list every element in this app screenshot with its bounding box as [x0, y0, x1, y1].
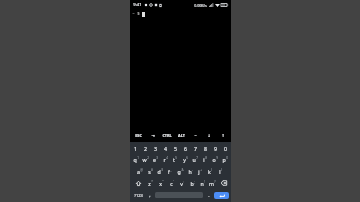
staticText: 1 — [137, 156, 139, 160]
button[interactable]: y — [180, 154, 190, 165]
staticText: 3 — [156, 156, 158, 160]
button[interactable]: l — [215, 165, 225, 177]
staticText: 4 — [166, 156, 168, 160]
staticText: ESC — [135, 133, 142, 138]
staticText: _ — [170, 168, 172, 172]
button[interactable]: c — [167, 177, 177, 189]
staticText: ?123 — [134, 193, 143, 198]
staticText: q — [133, 156, 137, 163]
staticText: f — [168, 168, 170, 175]
staticText: k — [208, 168, 211, 175]
staticText: - — [192, 168, 193, 172]
button[interactable]: 6 — [180, 143, 190, 154]
button[interactable]: k — [205, 165, 215, 177]
button[interactable]: . — [204, 189, 213, 201]
staticText: CTRL — [162, 133, 172, 138]
staticText: 5 — [174, 145, 177, 152]
staticText: l — [219, 168, 221, 175]
button[interactable]: CTRL — [160, 128, 174, 142]
button[interactable]: u — [190, 154, 200, 165]
staticText: . — [208, 192, 210, 199]
staticText: n — [200, 180, 204, 187]
staticText: e — [153, 156, 156, 163]
button[interactable]: ↑ — [216, 128, 230, 142]
button[interactable]: 5 — [170, 143, 180, 154]
staticText: w — [142, 156, 147, 163]
button[interactable]: ALT — [174, 128, 188, 142]
button[interactable]: ↓ — [202, 128, 216, 142]
button[interactable]: ESC — [131, 128, 146, 142]
button[interactable]: t — [170, 154, 180, 165]
button[interactable]: a — [135, 165, 145, 177]
button[interactable]: m — [207, 177, 217, 189]
staticText: u — [192, 156, 196, 163]
button[interactable]: , — [145, 189, 154, 201]
button[interactable]: h — [185, 165, 195, 177]
staticText: ~ $ — [132, 11, 140, 17]
staticText: i — [203, 156, 205, 163]
staticText: ↓ — [207, 133, 211, 137]
button[interactable]: f — [165, 165, 175, 177]
button[interactable]: b — [187, 177, 197, 189]
staticText: ⇥ — [151, 133, 155, 137]
staticText: ' — [173, 180, 174, 184]
button[interactable]: v — [177, 177, 187, 189]
staticText: s — [148, 168, 151, 175]
staticText: @ — [140, 168, 143, 172]
button[interactable]: p — [220, 154, 230, 165]
button[interactable]: 7 — [190, 143, 200, 154]
button[interactable]: ?123 — [131, 189, 145, 201]
button[interactable]: e — [150, 154, 160, 165]
button[interactable]: n — [197, 177, 207, 189]
button[interactable]: 0 — [220, 143, 230, 154]
button[interactable]: d — [155, 165, 165, 177]
button[interactable]: j — [195, 165, 205, 177]
staticText: : — [183, 180, 184, 184]
staticText: 5 — [175, 156, 177, 160]
staticText: ↑ — [221, 133, 225, 137]
staticText: 7 — [196, 156, 198, 160]
staticText: 1 — [134, 145, 137, 152]
button[interactable]: w — [140, 154, 150, 165]
button[interactable]: 4 — [160, 143, 170, 154]
staticText: 3 — [154, 145, 157, 152]
staticText: ; — [194, 180, 195, 184]
staticText: 0.00B/s — [194, 3, 207, 8]
staticText: 6 — [184, 145, 187, 152]
staticText: d — [157, 168, 161, 175]
staticText: # — [151, 168, 153, 172]
staticText: z — [148, 180, 151, 187]
button[interactable]: 2 — [140, 143, 150, 154]
button[interactable]: z — [145, 177, 156, 189]
button[interactable]: Shift — [131, 177, 145, 189]
staticText: g — [177, 168, 181, 175]
staticText: * — [151, 180, 153, 184]
button[interactable]: q — [131, 154, 140, 165]
button[interactable]: Backspace — [217, 177, 230, 189]
staticText: " — [162, 180, 164, 184]
button[interactable]: − — [188, 128, 202, 142]
staticText: 2 — [147, 156, 149, 160]
button[interactable]: i — [200, 154, 210, 165]
staticText: b — [190, 180, 194, 187]
button[interactable]: 1 — [131, 143, 140, 154]
staticText: 0 — [226, 156, 228, 160]
staticText: v — [180, 180, 183, 187]
button[interactable]: Enter — [214, 192, 229, 199]
button[interactable]: 8 — [200, 143, 210, 154]
button[interactable]: g — [175, 165, 185, 177]
staticText: 4 — [164, 145, 167, 152]
button[interactable]: 3 — [150, 143, 160, 154]
button[interactable]: s — [145, 165, 155, 177]
button[interactable]: r — [160, 154, 170, 165]
staticText: 6 — [186, 156, 188, 160]
button[interactable]: 9 — [210, 143, 220, 154]
button[interactable]: o — [210, 154, 220, 165]
button[interactable]: ⇥ — [146, 128, 160, 142]
button[interactable]: x — [156, 177, 167, 189]
staticText: h — [188, 168, 192, 175]
staticText: − — [194, 133, 197, 138]
staticText: $ — [161, 168, 163, 172]
staticText: c — [170, 180, 173, 187]
